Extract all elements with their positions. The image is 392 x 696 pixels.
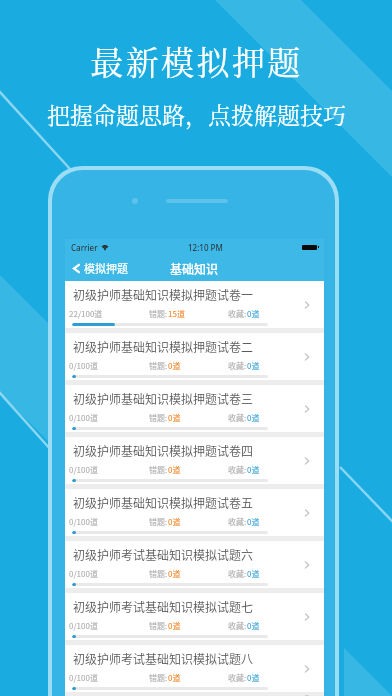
- staticText: 初级护师基础知识模拟押题试卷四: [73, 442, 254, 459]
- staticText: 0道: [168, 464, 181, 476]
- button[interactable]: 初级护师考试基础知识模拟试题六: [65, 541, 324, 588]
- staticText: 错题:: [149, 568, 168, 580]
- staticText: 收藏:: [228, 464, 247, 476]
- staticText: 收藏:: [228, 360, 247, 372]
- staticText: 0道: [168, 620, 181, 632]
- staticText: 初级护师基础知识模拟押题试卷五: [73, 494, 254, 511]
- other: Open: [303, 301, 311, 309]
- staticText: 0道: [168, 516, 181, 528]
- staticText: 错题:: [149, 308, 168, 320]
- staticText: 0/100道: [69, 516, 98, 528]
- staticText: 0/100道: [69, 464, 98, 476]
- staticText: 收藏:: [228, 672, 247, 684]
- staticText: 0道: [247, 516, 260, 528]
- staticText: 0/100道: [69, 360, 98, 372]
- staticText: 收藏:: [228, 412, 247, 424]
- staticText: 初级护师考试基础知识模拟试题六: [73, 546, 254, 563]
- staticText: 收藏:: [228, 568, 247, 580]
- staticText: 最新模拟押题: [90, 37, 303, 84]
- button[interactable]: 初级护师基础知识模拟押题试卷三: [65, 385, 324, 432]
- other: Open: [303, 613, 311, 621]
- staticText: 0道: [247, 308, 260, 320]
- staticText: 初级护师考试基础知识模拟试题八: [73, 650, 254, 667]
- staticText: 0道: [168, 360, 181, 372]
- other: Open: [303, 457, 311, 465]
- staticText: 错题:: [149, 620, 168, 632]
- staticText: 收藏:: [228, 620, 247, 632]
- staticText: 初级护师考试基础知识模拟试题七: [73, 598, 254, 615]
- staticText: 0道: [247, 568, 260, 580]
- staticText: 初级护师基础知识模拟押题试卷二: [73, 338, 254, 355]
- staticText: 错题:: [149, 516, 168, 528]
- other: Open: [303, 405, 311, 413]
- staticText: 0道: [247, 620, 260, 632]
- staticText: 初级护师基础知识模拟押题试卷一: [73, 286, 254, 303]
- staticText: 0/100道: [69, 620, 98, 632]
- staticText: 0道: [247, 360, 260, 372]
- button[interactable]: Back: [65, 255, 324, 281]
- staticText: 0道: [247, 412, 260, 424]
- staticText: 0/100道: [69, 672, 98, 684]
- other: Open: [303, 561, 311, 569]
- button[interactable]: 初级护师基础知识模拟押题试卷五: [65, 489, 324, 536]
- button[interactable]: 初级护师基础知识模拟押题试卷二: [65, 333, 324, 380]
- other: Back: [71, 263, 82, 274]
- staticText: 0道: [247, 464, 260, 476]
- staticText: 收藏:: [228, 516, 247, 528]
- staticText: 0道: [168, 672, 181, 684]
- other: Open: [303, 353, 311, 361]
- staticText: 基础知识: [170, 260, 219, 277]
- staticText: 22/100道: [69, 308, 103, 320]
- button[interactable]: 初级护师考试基础知识模拟试题七: [65, 593, 324, 640]
- staticText: 12:10 PM: [188, 242, 223, 253]
- staticText: Carrier: [71, 242, 98, 253]
- other: Open: [303, 509, 311, 517]
- staticText: 错题:: [149, 464, 168, 476]
- staticText: 15道: [168, 308, 185, 320]
- button[interactable]: 初级护师基础知识模拟押题试卷四: [65, 437, 324, 484]
- staticText: 模拟押题: [84, 260, 128, 276]
- staticText: 错题:: [149, 360, 168, 372]
- staticText: 0/100道: [69, 568, 98, 580]
- staticText: 0道: [168, 412, 181, 424]
- staticText: 错题:: [149, 672, 168, 684]
- staticText: 初级护师基础知识模拟押题试卷三: [73, 390, 254, 407]
- other: Open: [303, 665, 311, 673]
- staticText: 把握命题思路，点拨解题技巧: [47, 98, 346, 131]
- staticText: 0道: [168, 568, 181, 580]
- staticText: 0道: [247, 672, 260, 684]
- staticText: 收藏:: [228, 308, 247, 320]
- staticText: 0/100道: [69, 412, 98, 424]
- button[interactable]: 初级护师基础知识模拟押题试卷一: [65, 281, 324, 328]
- staticText: 错题:: [149, 412, 168, 424]
- button[interactable]: 初级护师考试基础知识模拟试题八: [65, 645, 324, 692]
